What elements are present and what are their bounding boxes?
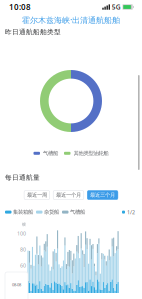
staticText: 气槽船 <box>70 209 85 215</box>
staticText: 最近一个月 <box>56 192 81 198</box>
button[interactable]: 最近一周 <box>24 191 50 200</box>
staticText: 最近一周 <box>27 192 47 198</box>
staticText: 80 <box>20 246 26 253</box>
staticText: 10:08 <box>9 2 31 12</box>
staticText: 昨日通航船舶类型 <box>5 28 61 36</box>
staticText: 60 <box>20 262 26 269</box>
staticText: 40 <box>20 278 26 285</box>
staticText: 100 <box>17 230 26 237</box>
staticText: 5G <box>112 3 121 11</box>
staticText: 1/2 <box>127 209 135 216</box>
staticText: 最近三个月 <box>90 192 115 198</box>
button[interactable]: 最近一个月 <box>53 191 84 200</box>
staticText: 杂货船 <box>44 209 59 215</box>
staticText: 其他类型油轮船 <box>73 150 108 157</box>
staticText: 每日通航量 <box>5 173 40 182</box>
staticText: 气槽船 <box>43 150 58 157</box>
staticText: 集装箱船 <box>13 209 33 215</box>
staticText: 08-08 <box>12 282 21 287</box>
button[interactable]: 最近三个月 <box>87 191 118 200</box>
staticText: 霍尔木兹海峡·出清通航船舶 <box>22 15 120 25</box>
staticText: 艘 <box>22 222 26 227</box>
